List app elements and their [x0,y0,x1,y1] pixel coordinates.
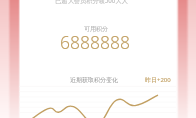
staticText: 近期获取积分变化 [70,76,118,84]
staticText: 昨日+200 [145,76,171,84]
staticText: 可用积分 [84,25,108,33]
staticText: 已超大会员积分领500大人 [55,0,128,4]
staticText: 6888888 [60,30,130,54]
button[interactable]: 已超大会员积分领500大人 [13,0,170,4]
button[interactable]: 6888888 [16,30,173,54]
